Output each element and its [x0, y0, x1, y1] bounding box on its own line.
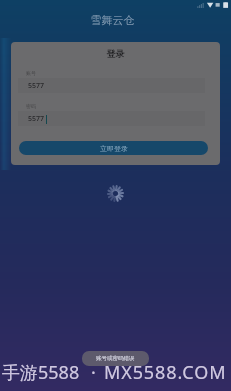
staticText: 5577 — [28, 114, 45, 124]
button[interactable]: 立即登录 — [19, 141, 208, 155]
staticText: · — [91, 360, 96, 385]
staticText: 账号 — [26, 70, 36, 76]
staticText: 手游5588 — [2, 360, 80, 385]
staticText: 账号或密码错误 — [96, 355, 135, 362]
other: Loading — [108, 186, 123, 201]
button[interactable]: 雪舞云仓 — [0, 13, 228, 27]
button[interactable]: 5577 — [18, 78, 205, 93]
staticText: 5577 — [28, 81, 45, 91]
staticText: 登录 — [11, 48, 220, 59]
staticText: MX5588.COM — [104, 360, 227, 385]
staticText: 密码 — [26, 103, 36, 109]
staticText: 立即登录 — [100, 144, 128, 153]
button[interactable]: 5577 — [18, 111, 205, 126]
